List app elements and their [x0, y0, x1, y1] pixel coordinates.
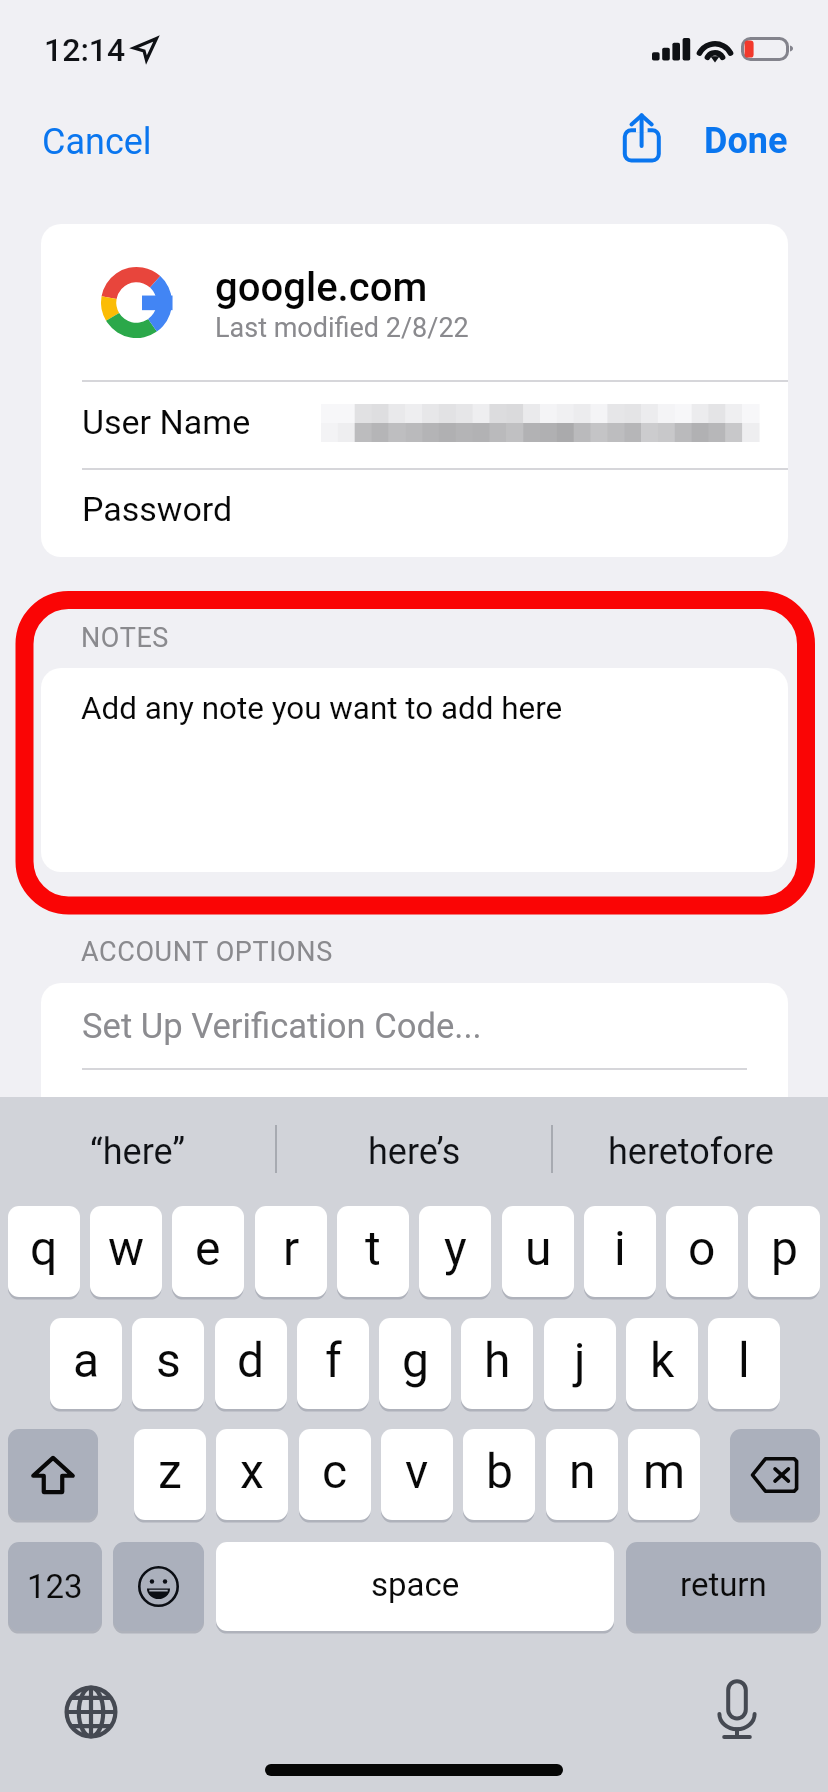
button[interactable]: t: [337, 1206, 409, 1297]
button[interactable]: Shift: [8, 1429, 98, 1520]
button[interactable]: Backspace: [730, 1429, 820, 1520]
button[interactable]: p: [748, 1206, 820, 1297]
staticText: Set Up Verification Code...: [82, 1006, 482, 1047]
staticText: 123: [27, 1567, 83, 1606]
staticText: s: [156, 1332, 181, 1388]
staticText: i: [614, 1220, 626, 1276]
button[interactable]: v: [381, 1429, 453, 1520]
button[interactable]: d: [215, 1318, 287, 1409]
staticText: Done: [704, 120, 788, 162]
button[interactable]: Set Up Verification Code...: [41, 983, 788, 1069]
staticText: t: [365, 1220, 381, 1276]
staticText: here’s: [368, 1131, 461, 1173]
staticText: j: [574, 1332, 586, 1388]
button[interactable]: q: [8, 1206, 80, 1297]
staticText: User Name: [82, 402, 251, 442]
button[interactable]: x: [216, 1429, 288, 1520]
staticText: Last modified 2/8/22: [215, 312, 469, 344]
button[interactable]: b: [463, 1429, 535, 1520]
button[interactable]: h: [461, 1318, 533, 1409]
button[interactable]: [41, 224, 788, 373]
button[interactable]: l: [708, 1318, 780, 1409]
staticText: m: [643, 1443, 686, 1499]
staticText: z: [158, 1443, 182, 1499]
button[interactable]: k: [626, 1318, 698, 1409]
staticText: return: [680, 1565, 767, 1604]
button[interactable]: Change keyboard: [56, 1677, 126, 1747]
button[interactable]: [41, 469, 788, 557]
button[interactable]: j: [544, 1318, 616, 1409]
button[interactable]: here’s: [277, 1097, 552, 1202]
staticText: l: [738, 1332, 750, 1388]
button[interactable]: Done: [686, 110, 806, 172]
staticText: c: [322, 1443, 348, 1499]
staticText: Password: [82, 489, 233, 529]
button[interactable]: z: [134, 1429, 206, 1520]
button[interactable]: y: [419, 1206, 491, 1297]
staticText: b: [486, 1443, 513, 1499]
button[interactable]: Dictate: [702, 1675, 772, 1745]
staticText: k: [650, 1332, 675, 1388]
staticText: Add any note you want to add here: [81, 690, 563, 727]
staticText: ACCOUNT OPTIONS: [81, 936, 333, 968]
staticText: google.com: [215, 264, 428, 311]
button[interactable]: g: [379, 1318, 451, 1409]
staticText: u: [525, 1220, 552, 1276]
button[interactable]: n: [546, 1429, 618, 1520]
button[interactable]: f: [297, 1318, 369, 1409]
button[interactable]: return: [626, 1542, 821, 1631]
staticText: heretofore: [608, 1131, 774, 1173]
button[interactable]: Add any note you want to add here: [41, 668, 788, 872]
staticText: space: [371, 1565, 460, 1604]
button[interactable]: m: [628, 1429, 700, 1520]
staticText: a: [73, 1332, 100, 1388]
button[interactable]: r: [255, 1206, 327, 1297]
button[interactable]: Emoji keyboard: [113, 1542, 204, 1631]
staticText: h: [484, 1332, 511, 1388]
button[interactable]: o: [666, 1206, 738, 1297]
staticText: p: [771, 1220, 798, 1276]
staticText: n: [569, 1443, 596, 1499]
button[interactable]: c: [299, 1429, 371, 1520]
button[interactable]: 123: [8, 1542, 102, 1631]
button[interactable]: heretofore: [553, 1097, 828, 1202]
staticText: v: [405, 1443, 429, 1499]
button[interactable]: w: [90, 1206, 162, 1297]
button[interactable]: u: [502, 1206, 574, 1297]
button[interactable]: Share: [600, 100, 684, 180]
staticText: r: [283, 1220, 300, 1276]
staticText: o: [688, 1220, 716, 1276]
staticText: q: [30, 1220, 58, 1276]
staticText: w: [108, 1220, 145, 1276]
button[interactable]: s: [132, 1318, 204, 1409]
staticText: e: [195, 1220, 221, 1276]
staticText: g: [402, 1332, 429, 1388]
staticText: y: [444, 1220, 467, 1276]
button[interactable]: Cancel: [24, 111, 170, 173]
staticText: 12:14: [44, 31, 126, 69]
staticText: x: [240, 1443, 264, 1499]
staticText: Cancel: [42, 121, 152, 163]
button[interactable]: i: [584, 1206, 656, 1297]
button[interactable]: space: [216, 1542, 614, 1631]
button[interactable]: [41, 381, 788, 469]
button[interactable]: a: [50, 1318, 122, 1409]
button[interactable]: “here”: [0, 1097, 276, 1202]
staticText: d: [237, 1332, 265, 1388]
staticText: NOTES: [81, 622, 169, 654]
staticText: f: [325, 1332, 342, 1388]
button[interactable]: e: [172, 1206, 244, 1297]
staticText: “here”: [90, 1131, 186, 1173]
